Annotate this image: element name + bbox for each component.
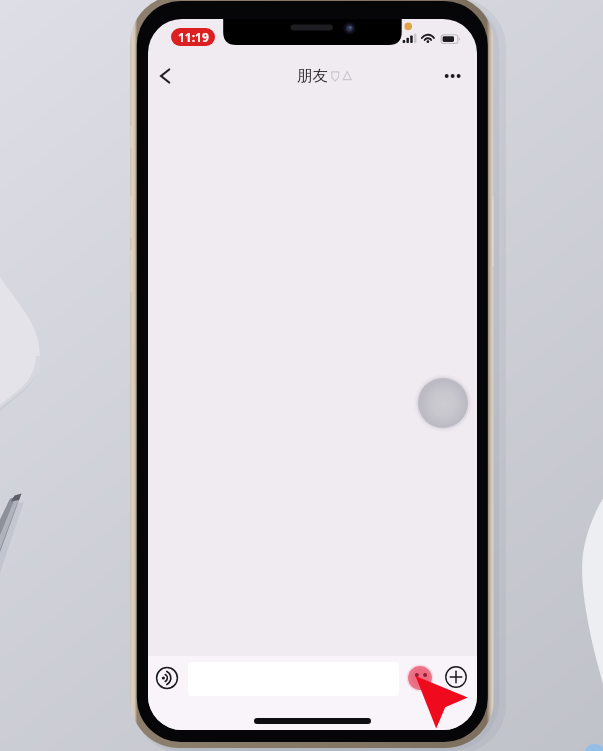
button[interactable]: 11:19: [171, 28, 215, 46]
button[interactable]: Emoji: [399, 657, 441, 699]
button[interactable]: More functions: [435, 656, 477, 698]
button[interactable]: AssistiveTouch: [414, 374, 472, 432]
button[interactable]: 朋友: [297, 65, 328, 86]
staticText: 朋友: [297, 66, 328, 86]
button[interactable]: Back: [149, 60, 181, 92]
staticText: 11:19: [178, 29, 209, 45]
button[interactable]: More options: [435, 64, 469, 88]
button[interactable]: Voice input: [148, 657, 188, 699]
